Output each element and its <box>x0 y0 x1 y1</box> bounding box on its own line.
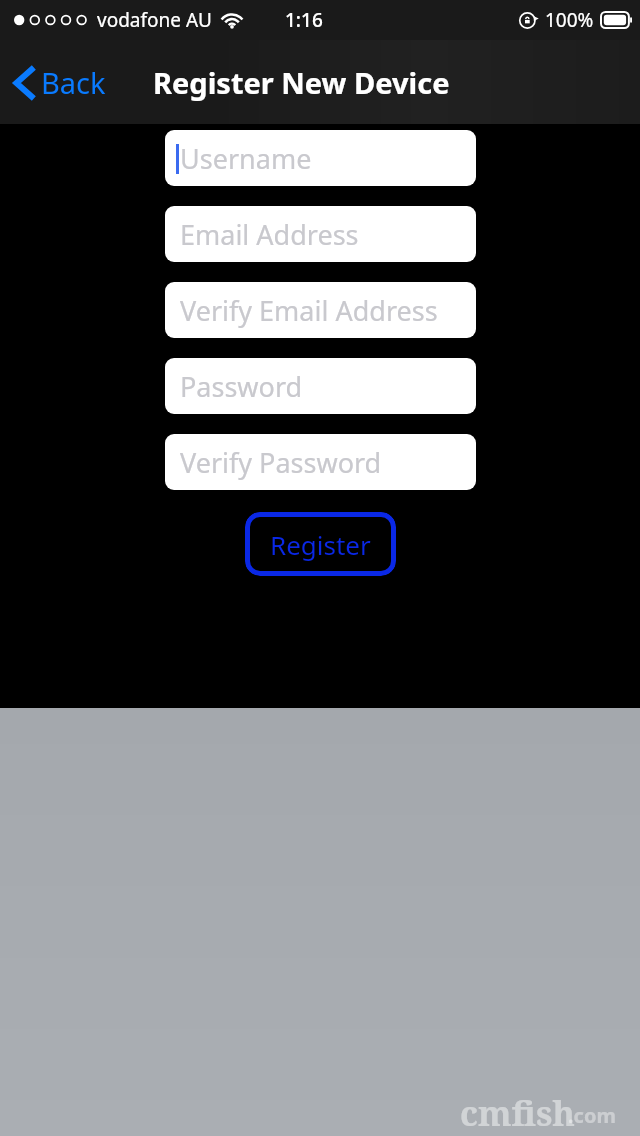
button[interactable]: Username <box>165 130 476 186</box>
staticText: Register New Device <box>153 63 450 102</box>
button[interactable]: Register <box>245 512 396 576</box>
staticText: vodafone AU <box>97 7 212 33</box>
staticText: Username <box>180 140 312 177</box>
staticText: .com <box>568 1102 616 1129</box>
button[interactable]: Verify Email Address <box>165 282 476 338</box>
button[interactable]: Verify Password <box>165 434 476 490</box>
staticText: Verify Password <box>180 444 382 481</box>
button[interactable]: Email Address <box>165 206 476 262</box>
staticText: Register <box>270 527 371 562</box>
staticText: Back <box>41 63 106 102</box>
staticText: Verify Email Address <box>180 292 438 329</box>
staticText: Password <box>180 368 303 405</box>
staticText: 1:16 <box>285 7 323 33</box>
staticText: Email Address <box>180 216 359 253</box>
staticText: cmfish <box>460 1090 575 1136</box>
button[interactable]: Password <box>165 358 476 414</box>
staticText: 100% <box>545 7 594 33</box>
button[interactable]: Back <box>0 55 116 110</box>
